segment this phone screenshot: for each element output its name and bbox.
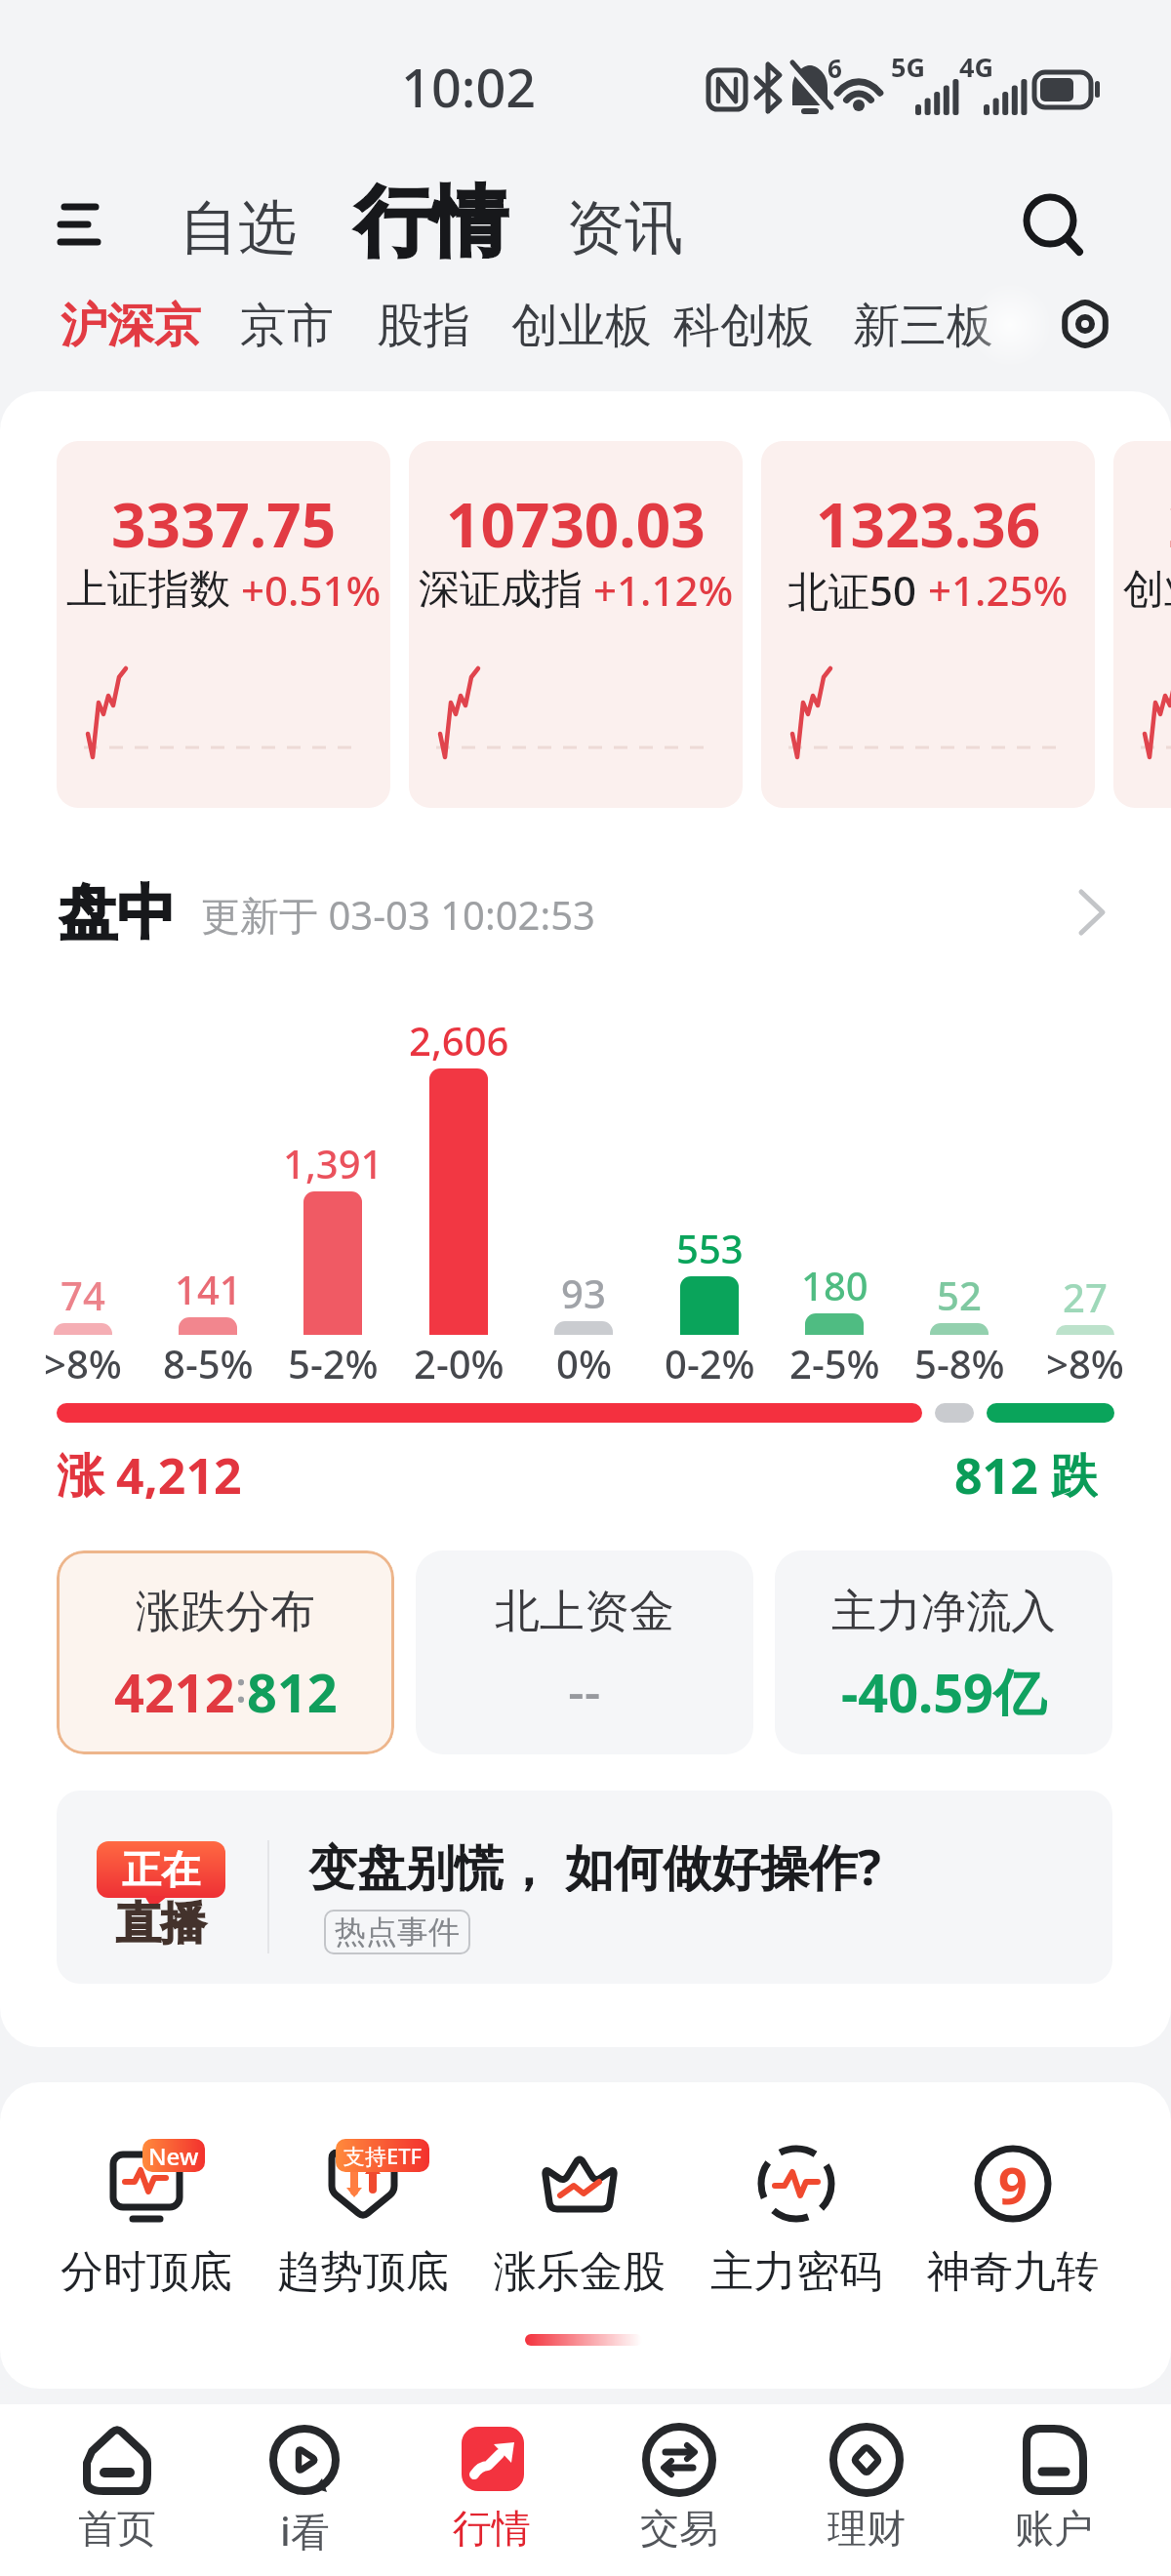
staticText: 涨跌分布 <box>136 1584 315 1638</box>
button[interactable]: 2157.46 <box>1113 441 1171 808</box>
staticText: 4G <box>959 49 993 80</box>
staticText: +0.51% <box>230 562 382 617</box>
button[interactable] <box>1064 878 1122 946</box>
staticText: 553 <box>676 1222 744 1268</box>
button[interactable]: 资讯 <box>561 191 688 265</box>
staticText: 涨 <box>57 1442 116 1499</box>
button[interactable]: 行情 <box>398 2408 585 2564</box>
staticText: New <box>148 2140 199 2172</box>
button[interactable]: 正在 <box>57 1791 1112 1984</box>
staticText: 180 <box>801 1259 868 1306</box>
button[interactable]: 1323.36 <box>761 441 1095 808</box>
staticText: 141 <box>175 1263 242 1309</box>
staticText: 6 <box>828 51 842 80</box>
staticText: 理财 <box>828 2504 906 2551</box>
button[interactable]: 3337.75 <box>57 441 390 808</box>
staticText: 74 <box>61 1268 105 1315</box>
staticText: 3337.75 <box>111 483 337 553</box>
staticText: >8% <box>44 1337 122 1382</box>
staticText: 分时顶底 <box>61 2245 232 2299</box>
staticText: 盘中 <box>59 876 176 946</box>
staticText: 新三板 <box>853 297 993 355</box>
button[interactable]: 涨乐金股 <box>482 2108 677 2322</box>
staticText: 深证成指 <box>419 564 583 616</box>
staticText: 交易 <box>640 2504 718 2551</box>
button[interactable]: 主力净流入 <box>775 1550 1112 1754</box>
staticText: 跌 <box>1038 1442 1098 1499</box>
staticText: 4,212 <box>116 1442 242 1499</box>
staticText: 直播 <box>116 1896 206 1952</box>
staticText: 0% <box>556 1337 612 1382</box>
button[interactable]: 9 <box>915 2108 1110 2322</box>
staticText: 主力净流入 <box>831 1584 1056 1638</box>
staticText: -40.59亿 <box>841 1656 1047 1716</box>
staticText: 812 <box>954 1442 1038 1499</box>
staticText: 8-5% <box>163 1337 254 1382</box>
staticText: +1.12% <box>583 562 734 617</box>
staticText: 自选 <box>180 191 297 265</box>
button[interactable]: 京市 <box>238 295 336 357</box>
staticText: 京市 <box>240 297 334 355</box>
staticText: 趋势顶底 <box>277 2245 449 2299</box>
staticText: 上证指数 <box>66 564 230 616</box>
button[interactable]: 科创板 <box>671 295 816 357</box>
staticText: 4212 <box>114 1656 235 1716</box>
staticText: 首页 <box>78 2504 156 2551</box>
button[interactable]: 新三板 <box>851 295 995 357</box>
button[interactable]: 涨跌分布 <box>57 1550 394 1754</box>
button[interactable]: 沪深京 <box>59 295 203 357</box>
staticText: 93 <box>561 1267 606 1313</box>
button[interactable]: 自选 <box>175 191 302 265</box>
staticText: 10730.03 <box>446 483 706 553</box>
staticText: 支持ETF <box>343 2141 423 2170</box>
button[interactable] <box>57 195 105 254</box>
staticText: 账户 <box>1015 2504 1093 2551</box>
staticText: 2,606 <box>409 1014 509 1061</box>
staticText: 主力密码 <box>710 2245 882 2299</box>
button[interactable]: 主力密码 <box>699 2108 894 2322</box>
button[interactable]: 北上资金 <box>416 1550 753 1754</box>
staticText: 神奇九转 <box>927 2245 1099 2299</box>
staticText: >8% <box>1046 1337 1124 1382</box>
staticText: 涨乐金股 <box>494 2245 666 2299</box>
staticText: 52 <box>937 1268 982 1315</box>
staticText: 科创板 <box>673 297 814 355</box>
staticText: 2-0% <box>414 1337 505 1382</box>
staticText: +1.25% <box>917 562 1069 617</box>
staticText: 沪深京 <box>61 297 201 355</box>
staticText: 北上资金 <box>495 1584 674 1638</box>
button[interactable]: 10730.03 <box>409 441 743 808</box>
staticText: 0-2% <box>665 1337 755 1382</box>
staticText: 9 <box>998 2150 1028 2219</box>
staticText: 变盘别慌， 如何做好操作? <box>308 1833 881 1892</box>
staticText: : <box>235 1657 247 1715</box>
button[interactable] <box>1058 297 1116 355</box>
button[interactable] <box>1015 187 1093 265</box>
button[interactable]: 趋势顶底 <box>265 2108 461 2322</box>
staticText: 27 <box>1063 1270 1108 1317</box>
button[interactable]: 理财 <box>773 2408 960 2564</box>
staticText: 行情 <box>453 2504 531 2551</box>
staticText: 资讯 <box>566 191 683 265</box>
staticText: 5G <box>891 49 925 80</box>
staticText: 热点事件 <box>335 1912 460 1952</box>
staticText: 1323.36 <box>816 483 1041 553</box>
button[interactable]: 分时顶底 <box>49 2108 244 2322</box>
staticText: -- <box>568 1656 601 1716</box>
staticText: 2-5% <box>789 1337 880 1382</box>
button[interactable]: i看 <box>211 2408 398 2564</box>
staticText: 5-8% <box>914 1337 1005 1382</box>
button[interactable]: 交易 <box>585 2408 773 2564</box>
button[interactable]: 创业板 <box>509 295 654 357</box>
staticText: 1,391 <box>283 1137 384 1184</box>
staticText: i看 <box>280 2504 330 2551</box>
button[interactable]: 账户 <box>960 2408 1148 2564</box>
staticText: 更新于 03-03 10:02:53 <box>201 888 595 937</box>
staticText: 10:02 <box>401 51 537 119</box>
staticText: 行情 <box>355 175 507 270</box>
button[interactable]: 行情 <box>332 174 531 271</box>
staticText: 股指 <box>377 297 470 355</box>
button[interactable]: 股指 <box>375 295 472 357</box>
button[interactable]: 首页 <box>23 2408 211 2564</box>
